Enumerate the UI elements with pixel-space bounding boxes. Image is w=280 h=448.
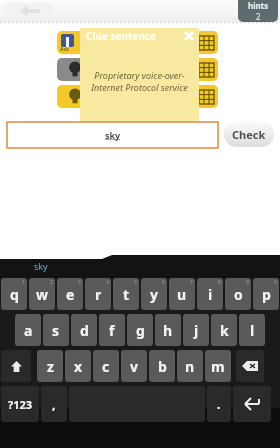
staticText: r bbox=[95, 285, 102, 304]
button[interactable]: k bbox=[211, 314, 237, 346]
staticText: a bbox=[24, 321, 33, 340]
button[interactable]: Grid tool 1 bbox=[194, 31, 218, 54]
staticText: 7 bbox=[190, 279, 193, 286]
button[interactable]: Ask on Facebook bbox=[57, 31, 93, 54]
button[interactable]: v bbox=[121, 350, 147, 382]
button[interactable]: y bbox=[141, 278, 167, 310]
button[interactable]: c bbox=[93, 350, 119, 382]
button[interactable]: Close bbox=[183, 30, 195, 42]
staticText: 0 bbox=[274, 279, 277, 286]
staticText: hints bbox=[248, 0, 269, 11]
button[interactable]: Check bbox=[224, 121, 274, 147]
button[interactable]: key bbox=[233, 386, 271, 422]
button[interactable]: a bbox=[15, 314, 41, 346]
button[interactable]: ?123 bbox=[1, 386, 39, 422]
staticText: i bbox=[208, 285, 213, 304]
staticText: f bbox=[109, 321, 115, 340]
button[interactable]: sky bbox=[34, 260, 48, 272]
staticText: 1 bbox=[22, 279, 25, 286]
staticText: k bbox=[220, 321, 229, 340]
button[interactable]: u bbox=[169, 278, 195, 310]
button[interactable]: s bbox=[43, 314, 69, 346]
button[interactable]: b bbox=[149, 350, 175, 382]
staticText: n bbox=[185, 357, 195, 376]
button[interactable]: h bbox=[155, 314, 181, 346]
staticText: h bbox=[163, 321, 173, 340]
staticText: ?123 bbox=[8, 397, 33, 412]
button[interactable]: n bbox=[177, 350, 203, 382]
staticText: m bbox=[211, 357, 225, 376]
staticText: s bbox=[52, 321, 60, 340]
staticText: Proprietary voice-over- Internet Protoco… bbox=[91, 69, 188, 94]
staticText: Check bbox=[232, 127, 266, 142]
button[interactable]: z bbox=[37, 350, 63, 382]
staticText: 2 bbox=[50, 279, 53, 286]
button[interactable]: sky bbox=[7, 122, 218, 148]
button[interactable]: x bbox=[65, 350, 91, 382]
button[interactable]: Grid tool 2 bbox=[194, 58, 218, 81]
staticText: sky bbox=[105, 129, 121, 141]
staticText: 9 bbox=[246, 279, 249, 286]
staticText: p bbox=[262, 285, 271, 304]
staticText: y bbox=[150, 285, 158, 304]
button[interactable]: , bbox=[41, 386, 67, 422]
button[interactable]: d bbox=[71, 314, 97, 346]
button[interactable]: Back bbox=[6, 3, 52, 19]
button[interactable]: r bbox=[85, 278, 111, 310]
staticText: l bbox=[250, 321, 255, 340]
button[interactable]: l bbox=[239, 314, 265, 346]
staticText: q bbox=[10, 285, 19, 304]
button[interactable]: p bbox=[253, 278, 279, 310]
button[interactable]: t bbox=[113, 278, 139, 310]
button[interactable]: Grid tool 3 bbox=[194, 85, 218, 108]
staticText: v bbox=[130, 357, 138, 376]
button[interactable]: . bbox=[207, 386, 231, 422]
button[interactable]: key bbox=[1, 350, 31, 382]
button[interactable]: w bbox=[29, 278, 55, 310]
button[interactable]: key bbox=[236, 350, 264, 382]
button[interactable]: Hint locked bbox=[57, 58, 93, 81]
button[interactable]: q bbox=[1, 278, 27, 310]
staticText: 6 bbox=[162, 279, 165, 286]
staticText: c bbox=[102, 357, 110, 376]
staticText: d bbox=[80, 321, 89, 340]
staticText: j bbox=[194, 321, 199, 340]
staticText: 4 bbox=[106, 279, 109, 286]
button[interactable]: hints bbox=[238, 0, 278, 22]
staticText: 3 bbox=[78, 279, 81, 286]
staticText: 8 bbox=[218, 279, 221, 286]
staticText: Ask bbox=[60, 46, 70, 53]
button[interactable]: e bbox=[57, 278, 83, 310]
staticText: Clue sentence bbox=[86, 29, 156, 43]
staticText: g bbox=[136, 321, 145, 340]
button[interactable]: f bbox=[99, 314, 125, 346]
button[interactable]: m bbox=[205, 350, 231, 382]
button[interactable]: i bbox=[197, 278, 223, 310]
staticText: , bbox=[52, 396, 56, 412]
staticText: 2 bbox=[256, 11, 261, 22]
staticText: u bbox=[177, 285, 187, 304]
staticText: o bbox=[234, 285, 243, 304]
button[interactable]: j bbox=[183, 314, 209, 346]
staticText: sky bbox=[34, 260, 48, 272]
staticText: . bbox=[217, 396, 221, 412]
staticText: b bbox=[158, 357, 167, 376]
button[interactable]: g bbox=[127, 314, 153, 346]
button[interactable]: o bbox=[225, 278, 251, 310]
staticText: t bbox=[123, 285, 130, 304]
button[interactable]: Hint bbox=[57, 85, 93, 108]
staticText: x bbox=[74, 357, 83, 376]
staticText: e bbox=[66, 285, 75, 304]
staticText: w bbox=[36, 285, 48, 304]
staticText: z bbox=[47, 357, 54, 376]
staticText: 5 bbox=[134, 279, 137, 286]
